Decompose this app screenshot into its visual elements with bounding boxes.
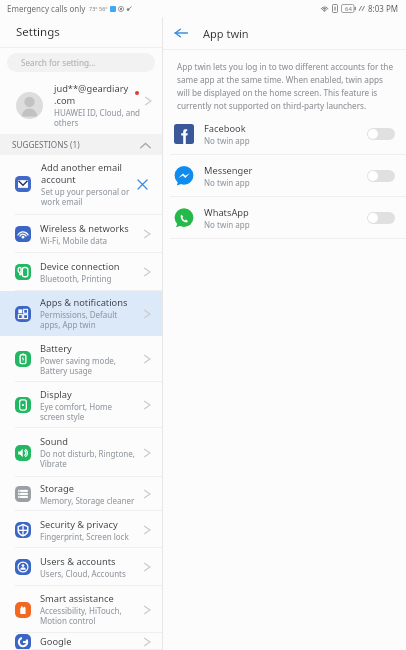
staticText: 8:03 PM [368, 3, 399, 14]
staticText: Security & privacy [40, 518, 118, 531]
staticText: No twin app [204, 135, 250, 146]
staticText: Emergency calls only [7, 3, 86, 14]
staticText: 64 [345, 5, 352, 13]
button[interactable]: Storage [0, 477, 162, 511]
staticText: Accessibility, HiTouch, Motion control [40, 605, 122, 627]
button[interactable]: Google [0, 633, 162, 650]
staticText: Add another email account [41, 161, 122, 186]
staticText: App twin [203, 26, 249, 41]
staticText: WhatsApp [204, 206, 249, 219]
staticText: Settings [16, 24, 60, 40]
button[interactable]: WhatsApp [163, 197, 406, 239]
staticText: Wireless & networks [40, 222, 129, 235]
staticText: Device connection [40, 260, 120, 273]
staticText: Power saving mode, Battery usage [40, 355, 116, 377]
staticText: Apps & notifications [40, 296, 128, 309]
staticText: Messenger [204, 164, 253, 177]
button[interactable]: Dismiss suggestion [136, 178, 149, 191]
button[interactable]: Smart assistance [0, 586, 162, 633]
staticText: Fingerprint, Screen lock [40, 531, 129, 542]
staticText: Sound [40, 435, 68, 448]
button[interactable]: Add another email account [0, 155, 162, 214]
staticText: Do not disturb, Ringtone, Vibrate [40, 448, 135, 470]
button[interactable]: Apps & notifications [0, 291, 162, 336]
staticText: Permissions, Default apps, App twin [40, 309, 118, 331]
staticText: Eye comfort, Home screen style [40, 401, 113, 423]
button[interactable]: Toggle Messenger twin app [367, 170, 395, 182]
staticText: Set up your personal or work email [41, 186, 130, 208]
button[interactable]: Security & privacy [0, 511, 162, 548]
button[interactable]: Users & accounts [0, 548, 162, 586]
staticText: SUGGESTIONS (1) [12, 139, 80, 150]
button[interactable]: Collapse suggestions [138, 138, 152, 152]
button[interactable]: Sound [0, 428, 162, 477]
staticText: Memory, Storage cleaner [40, 495, 135, 506]
staticText: Google [40, 635, 72, 648]
button[interactable]: Back [170, 22, 192, 44]
staticText: Smart assistance [40, 592, 114, 605]
button[interactable]: Display [0, 382, 162, 428]
button[interactable]: Search for setting... [7, 53, 155, 72]
button[interactable]: Facebook [163, 113, 406, 155]
button[interactable]: Device connection [0, 253, 162, 291]
staticText: Search for setting... [21, 57, 96, 68]
staticText: Display [40, 388, 72, 401]
staticText: App twin lets you log in to two differen… [177, 61, 394, 112]
staticText: HUAWEI ID, Cloud, and others [54, 107, 141, 129]
staticText: Bluetooth, Printing [40, 273, 112, 284]
staticText: Battery [40, 342, 72, 355]
staticText: Users, Cloud, Accounts [40, 568, 126, 579]
button[interactable]: jud**@geardiary .com [0, 76, 162, 134]
staticText: 73° 56° [89, 5, 108, 12]
button[interactable]: Wireless & networks [0, 215, 162, 253]
button[interactable]: Toggle WhatsApp twin app [367, 212, 395, 224]
button[interactable]: Toggle Facebook twin app [367, 128, 395, 140]
staticText: Wi-Fi, Mobile data [40, 235, 108, 246]
staticText: jud**@geardiary .com [54, 82, 129, 107]
staticText: Facebook [204, 122, 246, 135]
staticText: No twin app [204, 219, 250, 230]
staticText: Users & accounts [40, 555, 116, 568]
staticText: No twin app [204, 177, 250, 188]
staticText: Storage [40, 482, 74, 495]
button[interactable]: Messenger [163, 155, 406, 197]
button[interactable]: Battery [0, 336, 162, 382]
